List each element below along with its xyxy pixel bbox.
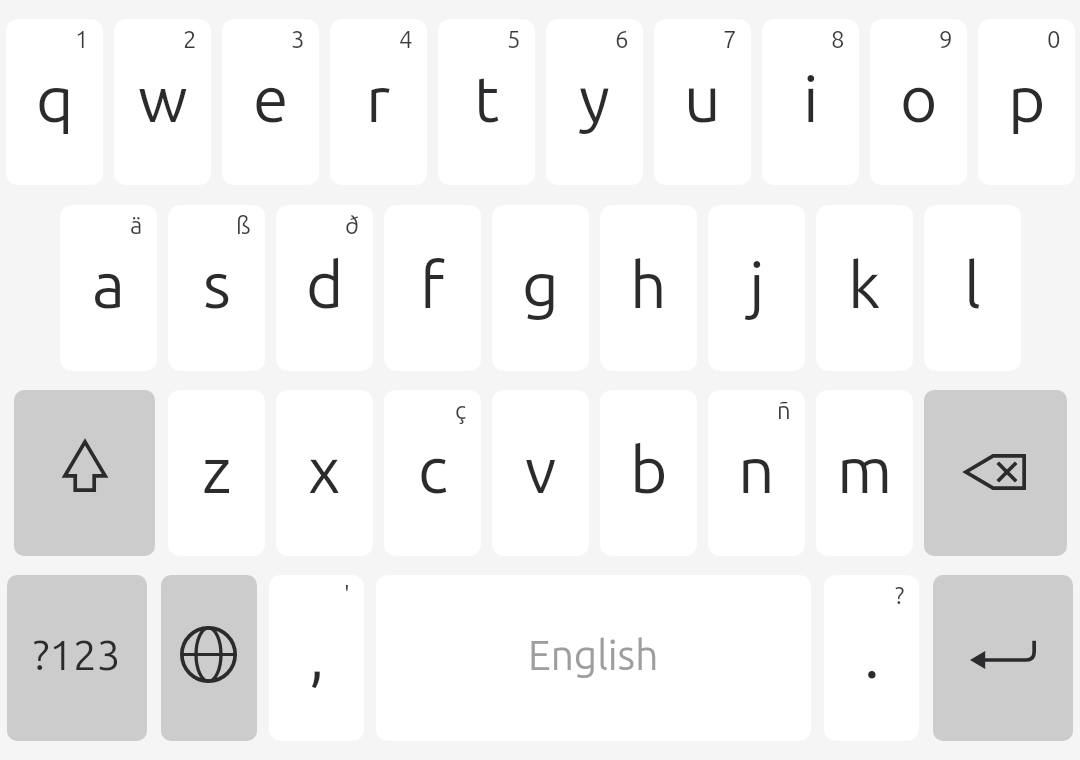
button[interactable]: j bbox=[708, 205, 805, 371]
button[interactable]: z bbox=[168, 390, 265, 556]
staticText: l bbox=[964, 248, 981, 320]
button[interactable]: 3 bbox=[222, 19, 319, 185]
button[interactable]: 6 bbox=[546, 19, 643, 185]
button[interactable]: b bbox=[600, 390, 697, 556]
staticText: 4 bbox=[399, 26, 413, 53]
staticText: n bbox=[738, 433, 775, 505]
staticText: 8 bbox=[831, 26, 845, 53]
staticText: c bbox=[418, 433, 448, 505]
staticText: ? bbox=[895, 582, 905, 609]
button[interactable]: Enter bbox=[933, 575, 1073, 741]
button[interactable]: English bbox=[376, 575, 811, 741]
staticText: g bbox=[522, 248, 559, 320]
staticText: 5 bbox=[507, 26, 521, 53]
staticText: ç bbox=[455, 397, 467, 424]
button[interactable]: 9 bbox=[870, 19, 967, 185]
staticText: k bbox=[848, 248, 881, 320]
button[interactable]: Shift bbox=[14, 390, 155, 556]
button[interactable]: ?123 bbox=[7, 575, 147, 741]
staticText: ä bbox=[130, 212, 143, 239]
staticText: f bbox=[420, 248, 445, 320]
button[interactable]: 4 bbox=[330, 19, 427, 185]
staticText: a bbox=[92, 248, 125, 320]
button[interactable]: l bbox=[924, 205, 1021, 371]
staticText: 7 bbox=[723, 26, 737, 53]
staticText: d bbox=[306, 248, 344, 320]
staticText: ß bbox=[236, 212, 251, 239]
staticText: h bbox=[630, 248, 667, 320]
staticText: b bbox=[630, 433, 668, 505]
button[interactable]: 7 bbox=[654, 19, 751, 185]
staticText: p bbox=[1008, 62, 1046, 134]
staticText: r bbox=[366, 62, 391, 134]
button[interactable]: ñ bbox=[708, 390, 805, 556]
staticText: e bbox=[253, 62, 289, 134]
button[interactable]: 0 bbox=[978, 19, 1075, 185]
button[interactable]: k bbox=[816, 205, 913, 371]
button[interactable]: Switch language bbox=[161, 575, 257, 741]
button[interactable]: f bbox=[384, 205, 481, 371]
button[interactable]: h bbox=[600, 205, 697, 371]
staticText: 6 bbox=[615, 26, 629, 53]
staticText: ' bbox=[344, 582, 350, 609]
button[interactable]: ' bbox=[269, 575, 364, 741]
staticText: ñ bbox=[777, 397, 791, 424]
button[interactable]: ß bbox=[168, 205, 265, 371]
staticText: m bbox=[837, 433, 893, 505]
staticText: x bbox=[308, 433, 341, 505]
staticText: q bbox=[36, 62, 74, 134]
staticText: z bbox=[202, 433, 232, 505]
button[interactable]: ? bbox=[824, 575, 919, 741]
staticText: . bbox=[864, 618, 880, 690]
button[interactable]: g bbox=[492, 205, 589, 371]
staticText: 1 bbox=[75, 26, 89, 53]
staticText: English bbox=[528, 632, 659, 677]
button[interactable]: v bbox=[492, 390, 589, 556]
button[interactable]: 8 bbox=[762, 19, 859, 185]
button[interactable]: ð bbox=[276, 205, 373, 371]
staticText: s bbox=[203, 248, 231, 320]
button[interactable]: ç bbox=[384, 390, 481, 556]
staticText: , bbox=[309, 618, 325, 690]
staticText: j bbox=[749, 248, 765, 320]
button[interactable]: 1 bbox=[6, 19, 103, 185]
staticText: 3 bbox=[291, 26, 305, 53]
staticText: w bbox=[138, 62, 188, 134]
button[interactable]: Backspace bbox=[924, 390, 1067, 556]
staticText: v bbox=[525, 433, 557, 505]
staticText: 0 bbox=[1047, 26, 1061, 53]
button[interactable]: 2 bbox=[114, 19, 211, 185]
staticText: o bbox=[900, 62, 938, 134]
button[interactable]: 5 bbox=[438, 19, 535, 185]
button[interactable]: ä bbox=[60, 205, 157, 371]
staticText: 2 bbox=[183, 26, 197, 53]
button[interactable]: x bbox=[276, 390, 373, 556]
staticText: ?123 bbox=[33, 631, 121, 678]
button[interactable]: m bbox=[816, 390, 913, 556]
staticText: u bbox=[684, 62, 721, 134]
staticText: y bbox=[579, 62, 610, 134]
staticText: 9 bbox=[939, 26, 953, 53]
staticText: t bbox=[474, 62, 500, 134]
staticText: i bbox=[803, 62, 819, 134]
staticText: ð bbox=[345, 212, 359, 239]
